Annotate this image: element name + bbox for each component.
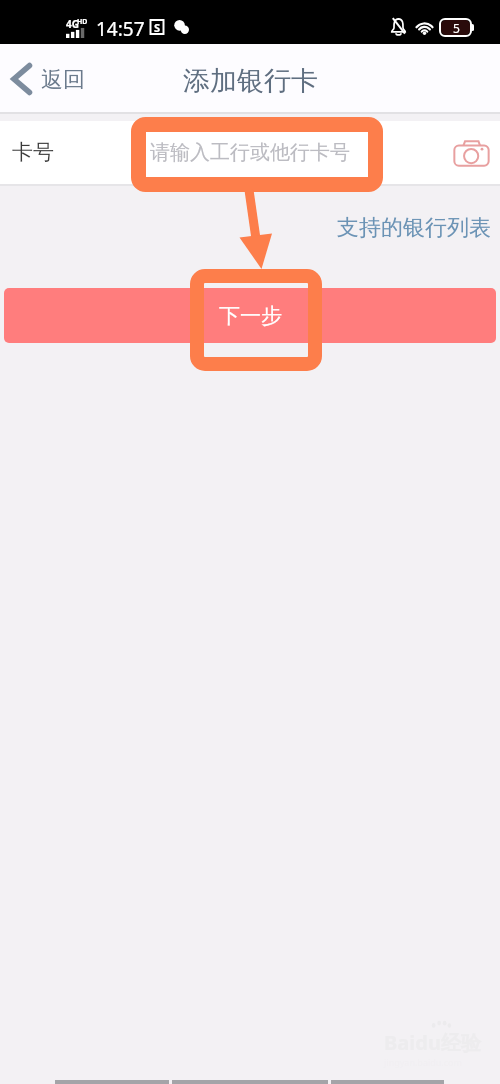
button[interactable]: 扫描银行卡 bbox=[447, 129, 495, 177]
staticText: HD bbox=[77, 17, 88, 27]
staticText: 请输入工行或他行卡号 bbox=[150, 140, 350, 165]
staticText: 5 bbox=[453, 20, 460, 36]
staticText: 卡号 bbox=[12, 139, 54, 165]
button[interactable]: 支持的银行列表 bbox=[329, 210, 499, 246]
other: WiFi bbox=[414, 19, 435, 36]
staticText: 返回 bbox=[41, 66, 85, 94]
button[interactable]: 下一步 bbox=[4, 288, 496, 343]
staticText: 添加银行卡 bbox=[183, 64, 318, 98]
staticText: 4G bbox=[66, 17, 79, 31]
button[interactable]: 返回 bbox=[0, 57, 95, 101]
staticText: 下一步 bbox=[219, 303, 282, 329]
other: 静音 bbox=[391, 17, 406, 36]
staticText: S bbox=[154, 20, 161, 35]
staticText: 支持的银行列表 bbox=[337, 214, 491, 242]
staticText: 14:57 bbox=[96, 16, 145, 42]
